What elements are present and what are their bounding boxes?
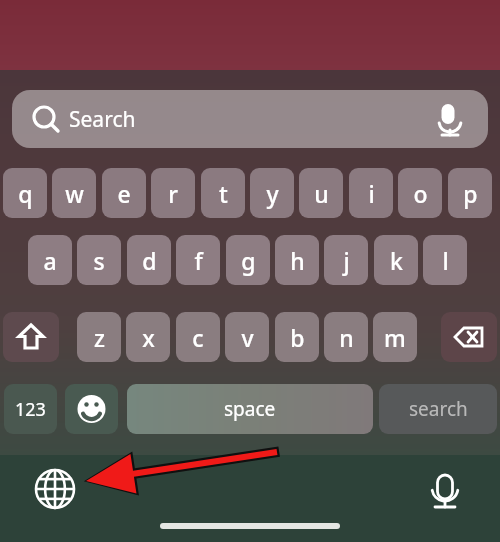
button[interactable]: n xyxy=(324,312,368,362)
staticText: t xyxy=(219,178,228,209)
button[interactable]: s xyxy=(77,235,121,285)
button[interactable]: h xyxy=(275,235,319,285)
button[interactable]: x xyxy=(126,312,170,362)
staticText: g xyxy=(241,245,256,276)
staticText: q xyxy=(18,178,33,209)
staticText: Search xyxy=(69,105,136,134)
staticText: k xyxy=(390,245,403,276)
staticText: a xyxy=(43,245,57,276)
staticText: f xyxy=(194,245,203,276)
button[interactable]: v xyxy=(225,312,269,362)
button[interactable]: Emoji xyxy=(65,384,118,434)
button[interactable]: u xyxy=(299,168,343,218)
staticText: r xyxy=(168,178,178,209)
button[interactable]: k xyxy=(374,235,418,285)
button[interactable]: search xyxy=(379,384,497,434)
button[interactable]: Search xyxy=(12,90,488,148)
button[interactable]: g xyxy=(226,235,270,285)
button[interactable]: f xyxy=(176,235,220,285)
staticText: i xyxy=(368,178,375,209)
button[interactable]: Shift xyxy=(3,312,59,362)
button[interactable]: z xyxy=(77,312,121,362)
staticText: search xyxy=(409,396,468,422)
staticText: n xyxy=(339,322,354,353)
button[interactable]: y xyxy=(250,168,294,218)
staticText: c xyxy=(192,322,204,353)
button[interactable]: t xyxy=(201,168,245,218)
button[interactable]: e xyxy=(102,168,146,218)
button[interactable]: o xyxy=(398,168,442,218)
button[interactable]: p xyxy=(448,168,492,218)
staticText: space xyxy=(224,396,276,422)
button[interactable]: l xyxy=(423,235,467,285)
staticText: h xyxy=(290,245,305,276)
button[interactable]: w xyxy=(52,168,96,218)
staticText: z xyxy=(94,322,105,353)
button[interactable]: 123 xyxy=(4,384,57,434)
staticText: e xyxy=(117,178,131,209)
button[interactable]: i xyxy=(349,168,393,218)
button[interactable]: j xyxy=(324,235,368,285)
button[interactable]: q xyxy=(3,168,47,218)
staticText: y xyxy=(266,178,279,209)
button[interactable]: r xyxy=(151,168,195,218)
button[interactable]: Voice input xyxy=(423,467,467,511)
staticText: p xyxy=(463,178,478,209)
staticText: u xyxy=(314,178,329,209)
button[interactable]: Change keyboard language xyxy=(33,467,77,511)
staticText: w xyxy=(65,178,84,209)
staticText: b xyxy=(290,322,305,353)
staticText: o xyxy=(413,178,428,209)
staticText: x xyxy=(142,322,155,353)
staticText: l xyxy=(442,245,449,276)
button[interactable]: a xyxy=(28,235,72,285)
button[interactable]: b xyxy=(275,312,319,362)
button[interactable]: space xyxy=(127,384,373,434)
button[interactable]: d xyxy=(127,235,171,285)
staticText: v xyxy=(241,322,254,353)
button[interactable]: c xyxy=(176,312,220,362)
staticText: m xyxy=(384,322,406,353)
staticText: d xyxy=(142,245,157,276)
button[interactable]: Backspace xyxy=(441,312,497,362)
staticText: 123 xyxy=(15,397,46,422)
staticText: s xyxy=(93,245,105,276)
button[interactable]: m xyxy=(373,312,417,362)
staticText: j xyxy=(343,245,350,276)
